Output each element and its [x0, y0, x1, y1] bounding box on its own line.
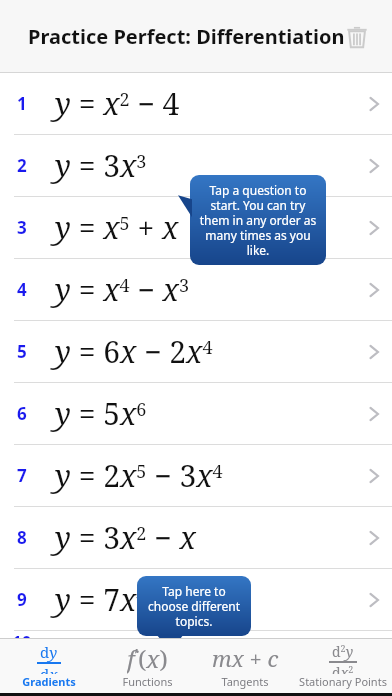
staticText: 6: [17, 402, 27, 425]
staticText: 7: [17, 464, 27, 487]
staticText: Functions: [122, 674, 173, 689]
button[interactable]: 6: [0, 383, 392, 444]
staticText: Gradients: [22, 674, 76, 689]
button[interactable]: d2y: [294, 639, 392, 693]
staticText: 9: [17, 588, 27, 611]
staticText: Stationary Points: [299, 674, 387, 689]
staticText: y = 5x6: [55, 393, 147, 434]
button[interactable]: f′(x): [98, 639, 196, 693]
button[interactable]: mx + c: [196, 639, 294, 693]
staticText: y = 3x3: [55, 145, 147, 186]
staticText: y = 2x5 − 3x4: [55, 455, 223, 496]
staticText: 2: [17, 154, 27, 177]
button[interactable]: Delete all: [340, 20, 374, 54]
staticText: y = x5 + x: [55, 207, 179, 248]
staticText: f′(x): [127, 642, 168, 674]
staticText: y = x4 − x3: [55, 269, 190, 310]
staticText: y = 7x4 + 2x: [55, 579, 212, 620]
staticText: 8: [17, 526, 27, 549]
staticText: y = x3: [55, 631, 130, 647]
staticText: 3: [17, 216, 27, 239]
staticText: y = 6x − 2x4: [55, 331, 213, 372]
button[interactable]: 7: [0, 445, 392, 506]
staticText: 1: [17, 92, 27, 115]
staticText: 4: [17, 278, 27, 301]
button[interactable]: 8: [0, 507, 392, 568]
button[interactable]: 9: [0, 569, 392, 630]
staticText: 5: [17, 340, 27, 363]
button[interactable]: 1: [0, 73, 392, 134]
button[interactable]: 5: [0, 321, 392, 382]
staticText: Tap here to choose different topics.: [144, 583, 244, 629]
button[interactable]: dy: [0, 639, 98, 693]
staticText: Tangents: [221, 674, 269, 689]
button[interactable]: 4: [0, 259, 392, 320]
staticText: Practice Perfect: Differentiation: [28, 23, 345, 50]
staticText: d2y: [332, 642, 354, 661]
staticText: y = x2 − 4: [55, 83, 180, 124]
staticText: Tap a question to start. You can try the…: [197, 182, 319, 258]
staticText: 10: [12, 631, 32, 647]
staticText: mx + c: [212, 643, 279, 673]
button[interactable]: 3: [0, 197, 392, 258]
staticText: dy: [40, 642, 58, 662]
button[interactable]: 10: [0, 631, 392, 647]
staticText: y = 3x2 − x: [55, 517, 196, 558]
staticText: dx: [40, 664, 58, 674]
button[interactable]: 2: [0, 135, 392, 196]
staticText: dx2: [332, 663, 354, 674]
